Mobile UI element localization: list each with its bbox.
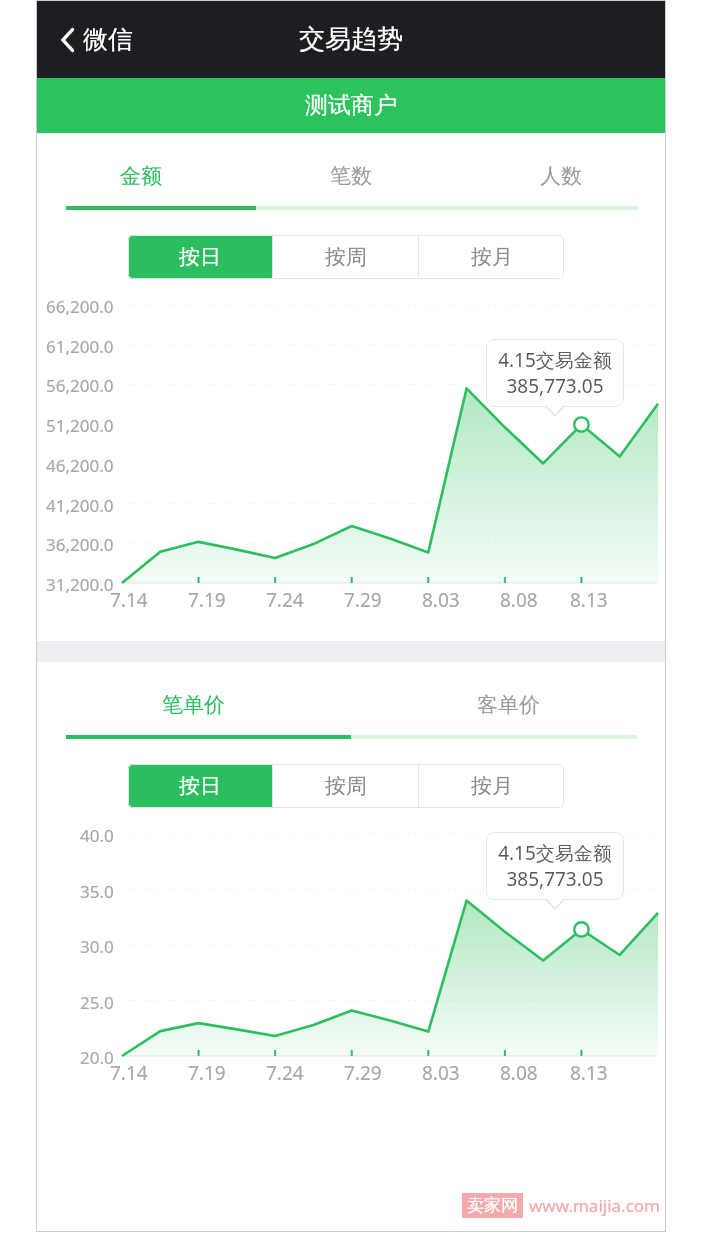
other: Back (60, 27, 76, 53)
button[interactable]: 笔数 (246, 157, 456, 195)
staticText: 385,773.05 (506, 373, 604, 399)
staticText: 人数 (540, 163, 582, 189)
staticText: 66,200.0 (46, 295, 114, 315)
button[interactable]: Back (54, 18, 139, 61)
staticText: 7.24 (266, 1060, 304, 1086)
staticText: 按月 (471, 773, 513, 799)
staticText: 按月 (471, 244, 513, 270)
staticText: 按日 (179, 244, 221, 270)
staticText: 20.0 (80, 1046, 114, 1066)
button[interactable]: 按月 (419, 235, 564, 279)
staticText: 8.03 (422, 1060, 460, 1086)
staticText: 7.14 (110, 587, 148, 613)
staticText: 35.0 (80, 880, 114, 900)
staticText: 4.15交易金额 (498, 347, 612, 373)
button[interactable]: 客单价 (351, 686, 666, 724)
staticText: 金额 (120, 163, 162, 189)
staticText: 8.13 (570, 1060, 608, 1086)
staticText: 交易趋势 (299, 23, 403, 56)
button[interactable]: 按周 (273, 235, 418, 279)
staticText: 7.29 (344, 1060, 382, 1086)
staticText: www.maijia.com (529, 1194, 660, 1217)
staticText: 4.15交易金额 (498, 840, 612, 866)
staticText: 笔单价 (162, 692, 225, 718)
button[interactable]: 金额 (36, 157, 246, 195)
staticText: 卖家网 (467, 1195, 518, 1216)
staticText: 按日 (179, 773, 221, 799)
staticText: 51,200.0 (46, 414, 114, 434)
button[interactable]: 按日 (128, 235, 272, 279)
staticText: 56,200.0 (46, 374, 114, 394)
staticText: 385,773.05 (506, 866, 604, 892)
staticText: 微信 (83, 24, 133, 55)
staticText: 7.14 (110, 1060, 148, 1086)
staticText: 8.03 (422, 587, 460, 613)
staticText: 46,200.0 (46, 454, 114, 474)
staticText: 8.08 (500, 587, 538, 613)
button[interactable]: 笔单价 (36, 686, 351, 724)
staticText: 61,200.0 (46, 335, 114, 355)
staticText: 40.0 (80, 824, 114, 844)
staticText: 30.0 (80, 935, 114, 955)
button[interactable]: 按日 (128, 764, 272, 808)
staticText: 8.08 (500, 1060, 538, 1086)
button[interactable]: 按周 (273, 764, 418, 808)
staticText: 7.29 (344, 587, 382, 613)
button[interactable]: 人数 (456, 157, 666, 195)
staticText: 7.19 (188, 587, 226, 613)
staticText: 测试商户 (305, 91, 397, 120)
button[interactable]: 按月 (419, 764, 564, 808)
staticText: 8.13 (570, 587, 608, 613)
staticText: 36,200.0 (46, 533, 114, 553)
staticText: 客单价 (477, 692, 540, 718)
staticText: 7.19 (188, 1060, 226, 1086)
staticText: 7.24 (266, 587, 304, 613)
staticText: 41,200.0 (46, 494, 114, 514)
staticText: 31,200.0 (46, 573, 114, 593)
staticText: 按周 (325, 244, 367, 270)
staticText: 笔数 (330, 163, 372, 189)
staticText: 按周 (325, 773, 367, 799)
staticText: 25.0 (80, 991, 114, 1011)
